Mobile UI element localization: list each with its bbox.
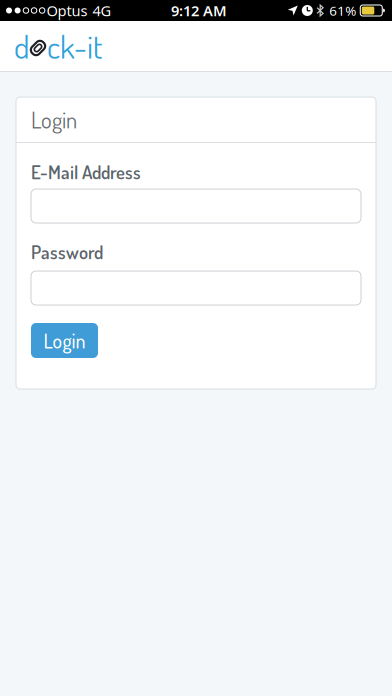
staticText: 4G bbox=[92, 1, 111, 20]
staticText: Login bbox=[31, 105, 77, 134]
button[interactable]: Login bbox=[31, 323, 98, 358]
staticText: 9:12 AM bbox=[171, 1, 227, 20]
staticText: E-Mail Address bbox=[31, 160, 141, 184]
button[interactable] bbox=[31, 189, 361, 223]
staticText: d bbox=[14, 26, 29, 66]
staticText: Optus bbox=[46, 1, 87, 20]
staticText: 61% bbox=[329, 2, 356, 19]
button[interactable] bbox=[31, 271, 361, 305]
staticText: ck-it bbox=[47, 26, 102, 66]
staticText: Password bbox=[31, 240, 103, 264]
staticText: Login bbox=[43, 328, 85, 353]
button[interactable]: d bbox=[14, 26, 102, 66]
